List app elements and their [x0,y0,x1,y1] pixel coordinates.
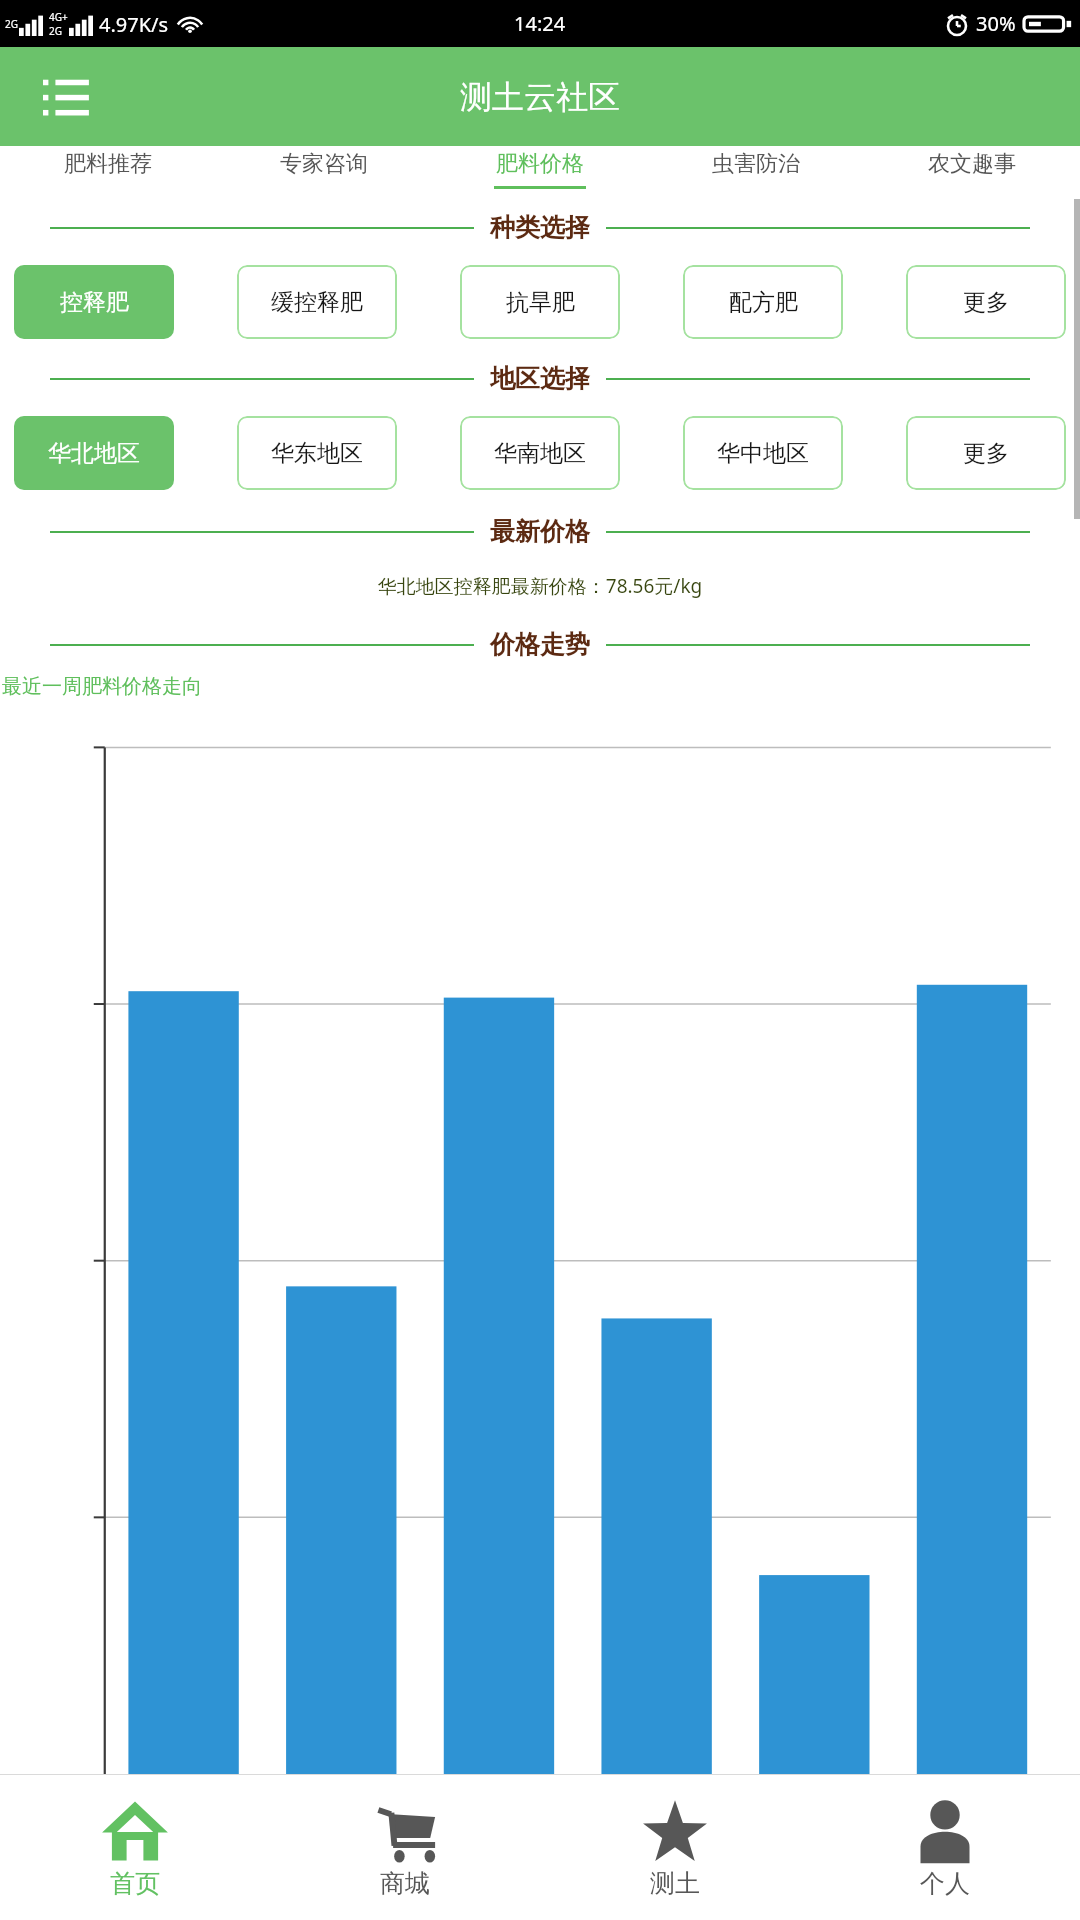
staticText: 30% [976,10,1016,37]
staticText: 肥料价格 [496,150,584,178]
staticText: 华北地区 [48,439,140,468]
staticText: 种类选择 [490,212,590,243]
staticText: 华南地区 [494,439,586,468]
staticText: 测土 [650,1868,700,1899]
staticText: 华东地区 [271,439,363,468]
staticText: 价格走势 [490,629,590,660]
button[interactable]: 个人 [810,1775,1080,1920]
button[interactable]: 抗旱肥 [460,265,620,339]
staticText: 最新价格 [490,516,590,547]
staticText: 2G [5,17,18,31]
staticText: 更多 [963,288,1009,317]
button[interactable]: 虫害防治 [648,146,864,198]
staticText: 华中地区 [717,439,809,468]
staticText: 肥料推荐 [64,150,152,178]
button[interactable]: 华东地区 [237,416,397,490]
staticText: 配方肥 [729,288,798,317]
staticText: 专家咨询 [280,150,368,178]
button[interactable]: 农文趣事 [864,146,1080,198]
staticText: 控释肥 [60,288,129,317]
button[interactable]: 首页 [0,1775,270,1920]
button[interactable]: 华南地区 [460,416,620,490]
staticText: 2G [49,24,62,38]
staticText: 缓控释肥 [271,288,363,317]
staticText: 最近一周肥料价格走向 [2,674,202,699]
button[interactable]: 控释肥 [14,265,174,339]
staticText: 4G+ [49,10,68,24]
staticText: 抗旱肥 [506,288,575,317]
staticText: 虫害防治 [712,150,800,178]
staticText: 4.97K/s [99,11,169,38]
button[interactable]: Menu [38,65,102,129]
button[interactable]: 肥料价格 [432,146,648,198]
button[interactable]: 华中地区 [683,416,843,490]
staticText: 商城 [380,1868,430,1899]
staticText: 14:24 [514,10,566,37]
button[interactable]: 缓控释肥 [237,265,397,339]
button[interactable]: 商城 [270,1775,540,1920]
staticText: 个人 [920,1868,970,1899]
button[interactable]: 测土 [540,1775,810,1920]
button[interactable]: 配方肥 [683,265,843,339]
button[interactable]: 专家咨询 [216,146,432,198]
staticText: 农文趣事 [928,150,1016,178]
staticText: 首页 [110,1868,160,1899]
button[interactable]: 华北地区 [14,416,174,490]
button[interactable]: 更多 [906,416,1066,490]
button[interactable]: 肥料推荐 [0,146,216,198]
staticText: 测土云社区 [460,77,620,117]
staticText: 地区选择 [490,363,590,394]
staticText: 华北地区控释肥最新价格：78.56元/kg [0,573,1080,599]
staticText: 更多 [963,439,1009,468]
button[interactable]: 更多 [906,265,1066,339]
